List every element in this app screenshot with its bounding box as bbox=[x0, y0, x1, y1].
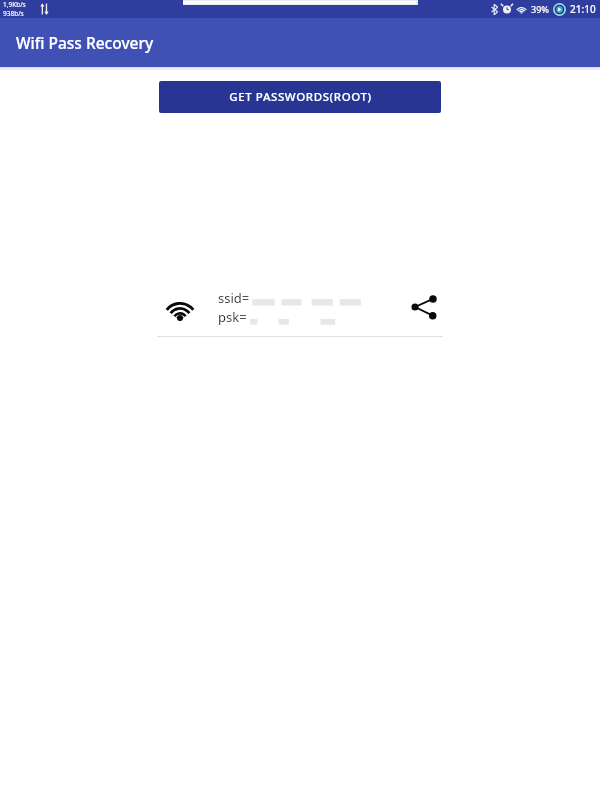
staticText: Wifi Pass Recovery bbox=[16, 32, 154, 53]
staticText: 21:10 bbox=[570, 2, 596, 16]
other: Wi-Fi network bbox=[163, 294, 197, 321]
button[interactable]: Share bbox=[409, 292, 439, 322]
button[interactable]: Wi-Fi network bbox=[157, 278, 443, 336]
staticText: 39% bbox=[531, 3, 549, 15]
staticText: psk= bbox=[218, 308, 247, 326]
staticText: GET PASSWORDS(ROOT) bbox=[229, 89, 372, 105]
button[interactable]: GET PASSWORDS(ROOT) bbox=[159, 81, 441, 113]
staticText: 938b/s bbox=[3, 9, 24, 18]
staticText: 1,9Kb/s bbox=[3, 0, 26, 9]
staticText: ssid= bbox=[218, 289, 250, 307]
